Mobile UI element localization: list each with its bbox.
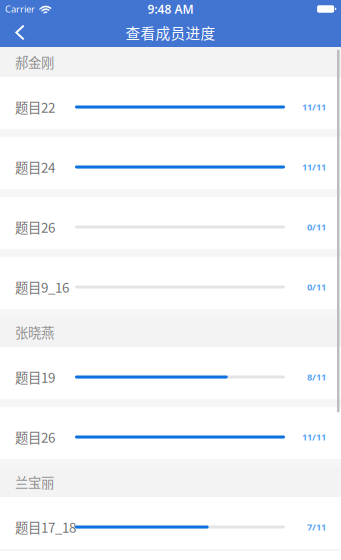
button[interactable]: 题目19: [0, 347, 341, 407]
staticText: 查看成员进度: [125, 22, 215, 43]
staticText: 0/11: [307, 221, 326, 233]
staticText: 题目9_16: [15, 277, 69, 297]
staticText: 题目22: [15, 97, 55, 117]
button[interactable]: Back: [0, 18, 40, 47]
staticText: 11/11: [302, 431, 326, 443]
button[interactable]: 题目9_16: [0, 257, 341, 317]
button[interactable]: 题目22: [0, 77, 341, 137]
staticText: 11/11: [302, 101, 326, 113]
staticText: 7/11: [307, 521, 326, 533]
staticText: 张晓燕: [15, 322, 54, 342]
button[interactable]: 题目24: [0, 137, 341, 197]
staticText: 题目24: [15, 157, 55, 177]
staticText: 兰宝丽: [15, 472, 54, 492]
staticText: 郝金刚: [15, 52, 54, 72]
button[interactable]: 题目26: [0, 407, 341, 467]
staticText: 题目19: [15, 367, 55, 387]
staticText: 题目26: [15, 217, 55, 237]
staticText: 9:48 AM: [147, 1, 193, 17]
button[interactable]: 题目17_18: [0, 497, 341, 557]
staticText: 0/11: [307, 281, 326, 293]
staticText: 8/11: [307, 371, 326, 383]
staticText: 题目17_18: [15, 517, 76, 537]
staticText: 11/11: [302, 161, 326, 173]
staticText: Carrier: [5, 3, 35, 15]
staticText: 题目26: [15, 427, 55, 447]
button[interactable]: 题目26: [0, 197, 341, 257]
